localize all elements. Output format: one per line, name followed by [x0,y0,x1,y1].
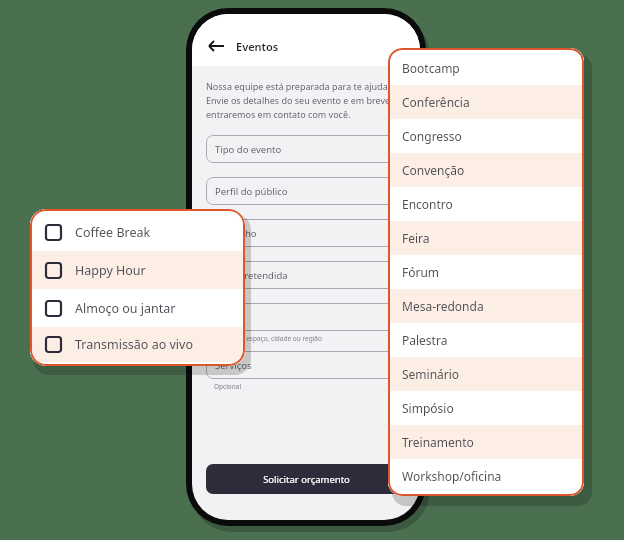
button[interactable]: Feira [388,221,584,255]
staticText: Solicitar orçamento [263,473,350,486]
staticText: Mesa-redonda [402,298,484,314]
staticText: Fórum [402,264,440,280]
staticText: Happy Hour [75,262,146,279]
button[interactable]: Treinamento [388,425,584,459]
button[interactable]: Solicitar orçamento [206,464,406,494]
staticText: Treinamento [402,434,474,450]
staticText: Nossa equipe está preparada para te ajud… [206,80,393,121]
button[interactable]: Perfil do público [206,177,406,205]
staticText: Eventos [236,39,279,54]
button[interactable]: Conferência [388,85,584,119]
staticText: Seminário [402,366,460,382]
staticText: Opcional [214,382,242,391]
button[interactable]: Back [206,36,226,56]
button[interactable]: Local [206,303,406,331]
staticText: Data pretendida [215,269,288,282]
staticText: Palestra [402,332,448,348]
staticText: Informe o espaço, cidade ou região [214,334,322,343]
staticText: Coffee Break [75,224,151,241]
staticText: Feira [402,230,430,246]
button[interactable]: Bootcamp [388,51,584,85]
button[interactable]: Tipo do evento [206,135,406,163]
button[interactable]: Palestra [388,323,584,357]
button[interactable]: Serviços [206,351,406,379]
button[interactable]: Seminário [388,357,584,391]
button[interactable]: Workshop/oficina [388,459,584,493]
staticText: Conferência [402,94,470,110]
button[interactable]: Transmissão ao vivo [30,327,245,362]
button[interactable]: Mesa-redonda [388,289,584,323]
button[interactable]: Encontro [388,187,584,221]
staticText: Bootcamp [402,60,460,76]
staticText: Tamanho [215,227,257,240]
button[interactable]: Fórum [388,255,584,289]
staticText: Encontro [402,196,453,212]
staticText: Congresso [402,128,462,144]
button[interactable]: Happy Hour [30,251,245,289]
button[interactable]: Coffee Break [30,213,245,251]
staticText: Serviços [215,359,252,372]
staticText: Workshop/oficina [402,468,502,484]
staticText: Almoço ou jantar [75,300,176,317]
button[interactable]: Data pretendida [206,261,406,289]
button[interactable]: Almoço ou jantar [30,289,245,327]
staticText: Tipo do evento [215,143,282,156]
button[interactable]: Congresso [388,119,584,153]
staticText: Convenção [402,162,465,178]
button[interactable]: Convenção [388,153,584,187]
button[interactable]: Tamanho [206,219,406,247]
button[interactable]: Simpósio [388,391,584,425]
staticText: Transmissão ao vivo [75,336,193,353]
staticText: Perfil do público [215,185,288,198]
staticText: Simpósio [402,400,454,416]
